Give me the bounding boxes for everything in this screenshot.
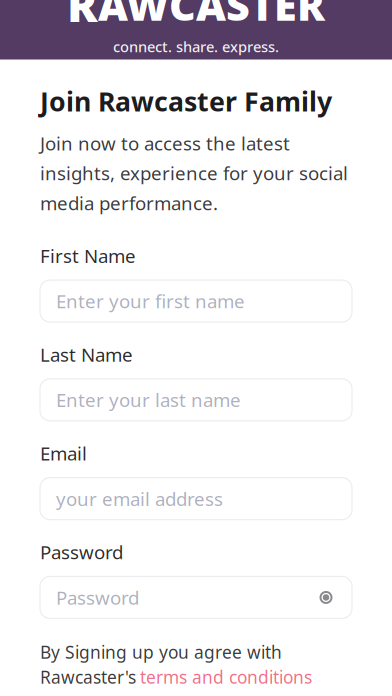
button[interactable]: Email bbox=[40, 441, 352, 520]
button[interactable]: Show password bbox=[312, 583, 340, 611]
button[interactable]: Last Name bbox=[40, 342, 352, 421]
staticText: Join now to access the latest insights, … bbox=[40, 131, 348, 215]
staticText: By Signing up you agree with bbox=[40, 640, 282, 663]
staticText: Email bbox=[40, 441, 87, 466]
staticText: your email address bbox=[56, 486, 223, 511]
staticText: AWCASTER bbox=[98, 0, 325, 32]
staticText: R bbox=[67, 0, 98, 35]
staticText: terms and conditions bbox=[140, 665, 312, 688]
staticText: Rawcaster's bbox=[40, 665, 136, 688]
staticText: Password bbox=[40, 540, 123, 564]
staticText: Enter your first name bbox=[56, 289, 245, 313]
staticText: Join Rawcaster Family bbox=[40, 83, 332, 119]
staticText: Password bbox=[56, 585, 139, 610]
staticText: Enter your last name bbox=[56, 387, 241, 412]
staticText: Last Name bbox=[40, 342, 133, 367]
staticText: connect. share. express. bbox=[113, 37, 279, 56]
staticText: First Name bbox=[40, 243, 136, 268]
button[interactable]: First Name bbox=[40, 243, 352, 322]
button[interactable]: Password bbox=[40, 540, 352, 618]
button[interactable]: terms and conditions bbox=[140, 665, 312, 688]
